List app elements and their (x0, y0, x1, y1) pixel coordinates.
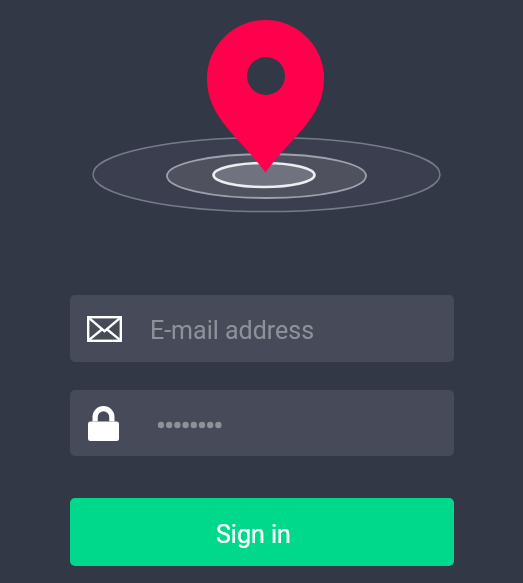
button[interactable]: Password (70, 390, 454, 456)
other: E-mail (87, 316, 122, 342)
button[interactable]: Sign in (70, 498, 454, 566)
staticText: E-mail address (150, 316, 315, 345)
button[interactable]: E-mail (70, 295, 454, 362)
other: Password (88, 406, 119, 441)
staticText: Sign in (216, 520, 291, 549)
